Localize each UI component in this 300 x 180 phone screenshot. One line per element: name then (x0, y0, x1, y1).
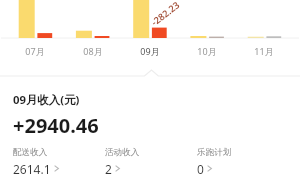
staticText: 09月收入(元) (13, 92, 80, 108)
staticText: 11月 (244, 45, 284, 57)
staticText: 09月 (130, 45, 170, 57)
staticText: 2614.1 (13, 161, 51, 177)
button[interactable]: 活动收入 (105, 147, 197, 177)
staticText: 活动收入 (105, 147, 140, 158)
button[interactable]: 乐跑计划 (197, 147, 289, 177)
staticText: 配送收入 (13, 147, 48, 158)
other: More (54, 165, 59, 172)
button[interactable]: 10月 (187, 45, 227, 57)
button[interactable]: 08月 (73, 45, 113, 57)
other: More (207, 165, 212, 172)
staticText: -282.23 (148, 0, 183, 29)
button[interactable]: 11月 (244, 45, 284, 57)
staticText: 2 (105, 161, 112, 177)
other: More (115, 165, 120, 172)
staticText: +2940.46 (13, 112, 99, 139)
staticText: 乐跑计划 (197, 147, 232, 158)
button[interactable]: 07月 (15, 45, 55, 57)
staticText: 0 (197, 161, 204, 177)
staticText: 07月 (15, 45, 55, 57)
button[interactable]: 09月 (130, 45, 170, 57)
button[interactable]: 配送收入 (13, 147, 105, 177)
staticText: 10月 (187, 45, 227, 57)
staticText: 08月 (73, 45, 113, 57)
